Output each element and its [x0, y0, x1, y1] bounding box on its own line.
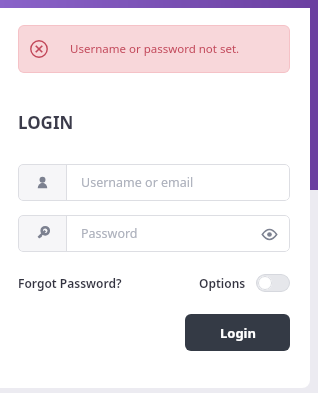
staticText: Username or email — [81, 174, 194, 191]
staticText: Options — [199, 275, 246, 291]
button[interactable]: Login — [185, 314, 290, 351]
staticText: Forgot Password? — [18, 275, 122, 291]
staticText: LOGIN — [18, 111, 74, 134]
button[interactable]: Forgot Password? — [18, 275, 122, 291]
button[interactable]: Show password — [252, 217, 286, 251]
staticText: Username or password not set. — [70, 41, 240, 57]
staticText: Login — [220, 324, 256, 342]
button[interactable]: Password — [18, 215, 290, 252]
button[interactable]: Username or password not set. — [18, 25, 290, 73]
button[interactable]: Username or email — [18, 164, 290, 201]
staticText: Password — [81, 225, 138, 242]
button[interactable]: Options — [199, 274, 290, 292]
